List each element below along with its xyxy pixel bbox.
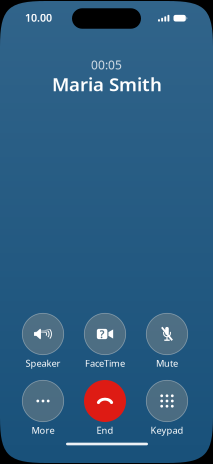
staticText: Keypad bbox=[150, 424, 183, 436]
staticText: Maria Smith bbox=[52, 72, 162, 96]
staticText: FaceTime bbox=[85, 357, 125, 369]
button[interactable]: Speaker bbox=[12, 313, 74, 368]
staticText: 10.00 bbox=[25, 10, 52, 25]
staticText: Speaker bbox=[25, 357, 60, 369]
button[interactable]: ? bbox=[74, 313, 136, 368]
button[interactable]: Mute bbox=[136, 313, 198, 368]
staticText: 00:05 bbox=[91, 57, 122, 73]
button[interactable]: End bbox=[74, 380, 136, 435]
button[interactable]: Keypad bbox=[136, 380, 198, 435]
staticText: More bbox=[31, 424, 54, 436]
staticText: Mute bbox=[156, 357, 178, 369]
staticText: ? bbox=[100, 327, 105, 341]
button[interactable]: More bbox=[12, 380, 74, 435]
staticText: End bbox=[96, 424, 113, 436]
